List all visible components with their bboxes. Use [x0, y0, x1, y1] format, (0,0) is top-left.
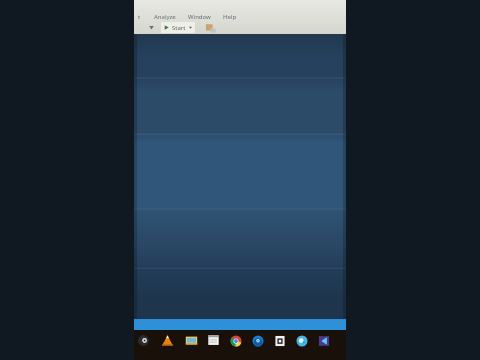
button[interactable]: VLC media player: [160, 333, 175, 348]
button[interactable]: Document: [206, 333, 221, 348]
button[interactable]: Start: [161, 22, 195, 33]
button[interactable]: Microsoft Edge: [250, 333, 265, 348]
button[interactable]: Tool: [204, 23, 216, 33]
staticText: t: [138, 13, 141, 21]
button[interactable]: Toolbar dropdown: [147, 23, 156, 32]
button[interactable]: Window: [187, 13, 212, 21]
staticText: Analyze: [154, 13, 176, 21]
button[interactable]: Help: [222, 13, 238, 21]
button[interactable]: t: [137, 13, 142, 21]
staticText: Window: [188, 13, 211, 21]
button[interactable]: Editor: [316, 333, 331, 348]
button[interactable]: File Explorer: [184, 333, 199, 348]
staticText: Start: [172, 24, 186, 32]
button[interactable]: Google Chrome: [228, 333, 243, 348]
button[interactable]: Start: [136, 333, 151, 348]
button[interactable]: Skype: [294, 333, 309, 348]
button[interactable]: Analyze: [153, 13, 177, 21]
button[interactable]: Microsoft Store: [272, 333, 287, 348]
staticText: Help: [223, 13, 237, 21]
